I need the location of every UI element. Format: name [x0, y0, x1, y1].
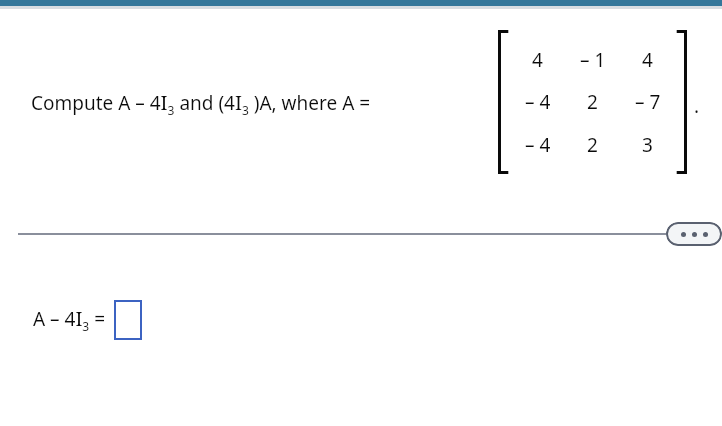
staticText: A – 4I3 = — [33, 306, 106, 334]
staticText: – 1 — [580, 47, 606, 73]
button[interactable]: Answer input for A minus 4 I 3 — [114, 300, 142, 340]
staticText: 4 — [532, 47, 543, 73]
staticText: – 4 — [525, 89, 551, 115]
staticText: . — [694, 93, 700, 119]
staticText: – 7 — [635, 89, 661, 115]
staticText: – 4 — [525, 132, 551, 158]
staticText: 2 — [587, 132, 598, 158]
staticText: Compute A – 4I3 and (4I3 )A, where A = — [31, 90, 376, 118]
staticText: 3 — [642, 132, 653, 158]
staticText: 2 — [587, 89, 598, 115]
staticText: 4 — [642, 47, 653, 73]
button[interactable]: More options — [666, 222, 722, 246]
